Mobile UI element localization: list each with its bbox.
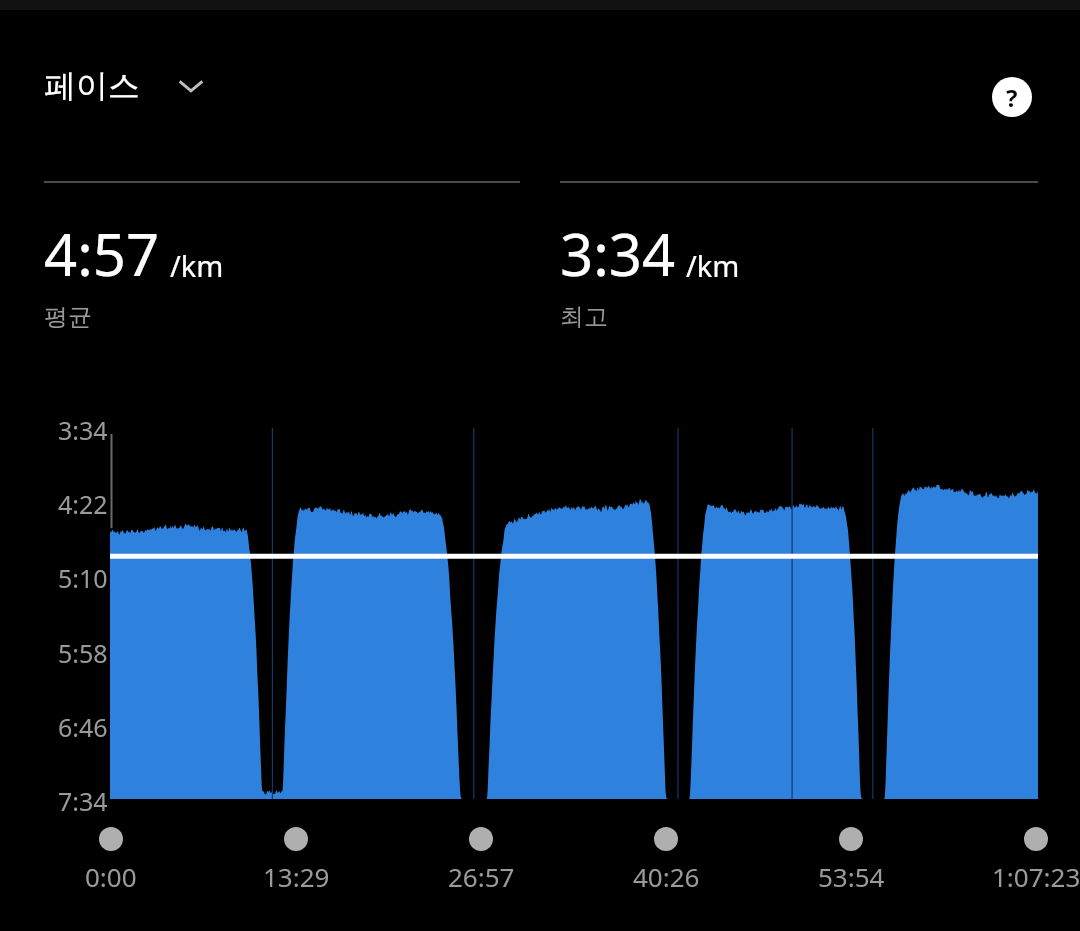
staticText: 13:29 bbox=[263, 859, 330, 894]
staticText: 0:00 bbox=[85, 859, 137, 894]
staticText: 7:34 bbox=[58, 784, 108, 818]
staticText: 1:07:23 bbox=[992, 859, 1080, 894]
staticText: 최고 bbox=[560, 302, 608, 332]
staticText: 3:34 bbox=[560, 214, 676, 293]
staticText: /km bbox=[686, 246, 740, 285]
staticText: 3:34 bbox=[58, 413, 108, 447]
staticText: 평균 bbox=[44, 302, 92, 332]
button[interactable]: 도움말 bbox=[988, 73, 1036, 121]
staticText: 5:58 bbox=[58, 636, 108, 670]
staticText: 4:57 bbox=[44, 214, 160, 293]
staticText: ? bbox=[1006, 81, 1018, 114]
staticText: 40:26 bbox=[633, 859, 700, 894]
staticText: /km bbox=[170, 246, 224, 285]
staticText: 4:22 bbox=[58, 487, 108, 521]
staticText: 페이스 bbox=[44, 66, 140, 106]
staticText: 5:10 bbox=[58, 561, 108, 595]
staticText: 53:54 bbox=[818, 859, 885, 894]
button[interactable]: 페이스 bbox=[44, 66, 214, 106]
staticText: 6:46 bbox=[58, 710, 108, 744]
staticText: 26:57 bbox=[448, 859, 515, 894]
